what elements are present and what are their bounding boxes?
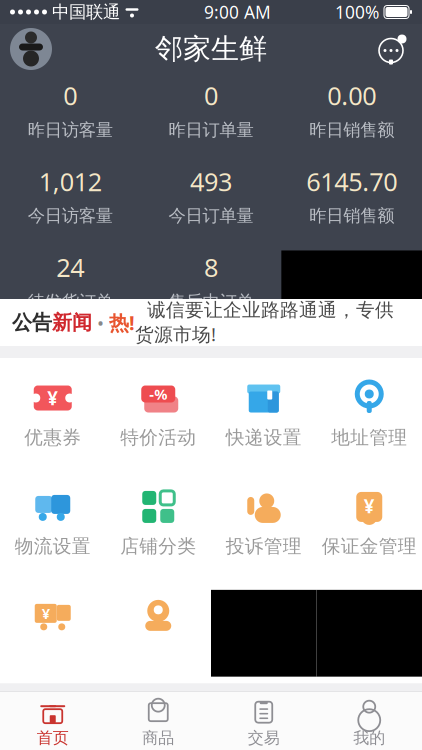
staticText: 昨日访客量 (28, 119, 113, 140)
staticText: 店铺分类 (120, 535, 196, 558)
button[interactable]: ¥ (316, 481, 422, 566)
button[interactable]: 商品 (105, 694, 211, 748)
staticText: 地址管理 (331, 426, 407, 449)
staticText: 新闻 (52, 310, 92, 335)
button[interactable]: ¥ (0, 372, 105, 457)
staticText: 昨日订单量 (168, 119, 253, 140)
staticText: 待发货订单 (28, 291, 113, 312)
staticText: 中国联通 (52, 1, 120, 23)
staticText: ¥ (364, 493, 375, 518)
button[interactable] (105, 590, 211, 677)
staticText: 诚信要让企业路路通通，专供货源市场! (135, 299, 394, 346)
button[interactable]: 投诉管理 (211, 481, 316, 566)
staticText: 0.00 (327, 79, 376, 112)
button[interactable]: 地址管理 (316, 372, 422, 457)
staticText: 快递设置 (226, 426, 302, 449)
button[interactable]: 店铺分类 (105, 481, 211, 566)
staticText: ¥ (47, 386, 58, 410)
staticText: 商品 (142, 728, 174, 748)
staticText: 8 (204, 250, 218, 284)
button[interactable]: 我的 (316, 694, 422, 748)
staticText: 邻家生鲜 (155, 32, 267, 66)
staticText: 1,012 (39, 164, 102, 198)
staticText: 493 (190, 164, 232, 198)
staticText: 昨日销售额 (309, 205, 394, 226)
staticText: 公告 (12, 310, 52, 335)
button[interactable]: Profile (10, 28, 52, 70)
staticText: 24 (56, 250, 84, 284)
staticText: 0 (204, 79, 218, 112)
staticText: 9:00 AM (204, 0, 271, 23)
staticText: 热! (109, 309, 135, 336)
staticText: 0 (63, 79, 77, 112)
staticText: 交易 (248, 728, 280, 748)
button[interactable]: 物流设置 (0, 481, 105, 566)
button[interactable]: ¥ (0, 590, 105, 677)
staticText: ¥ (42, 604, 50, 623)
staticText: 100% (335, 0, 379, 23)
staticText: 售后中订单 (168, 291, 253, 312)
staticText: 我的 (353, 728, 385, 748)
staticText: 6145.70 (306, 164, 397, 198)
staticText: 首页 (37, 728, 69, 748)
staticText: • (92, 310, 109, 335)
button[interactable]: 快递设置 (211, 372, 316, 457)
button[interactable]: -% (105, 372, 211, 457)
staticText: 昨日销售额 (309, 119, 394, 140)
staticText: 保证金管理 (322, 535, 417, 558)
button[interactable]: 首页 (0, 694, 105, 748)
button[interactable]: 公告 (0, 299, 422, 346)
staticText: 投诉管理 (226, 535, 302, 558)
staticText: 今日订单量 (168, 205, 253, 226)
staticText: -% (149, 384, 167, 404)
staticText: 物流设置 (15, 535, 91, 558)
staticText: 今日访客量 (28, 205, 113, 226)
staticText: 优惠券 (24, 426, 81, 449)
staticText: 特价活动 (120, 426, 196, 449)
button[interactable]: 交易 (211, 694, 316, 748)
button[interactable]: Messages (370, 28, 412, 70)
